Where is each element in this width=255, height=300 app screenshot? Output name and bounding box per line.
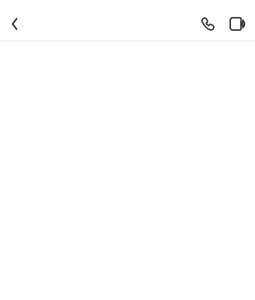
button[interactable]: Call [194,0,222,40]
button[interactable]: Back [0,0,44,40]
button[interactable]: Video call [224,0,254,40]
